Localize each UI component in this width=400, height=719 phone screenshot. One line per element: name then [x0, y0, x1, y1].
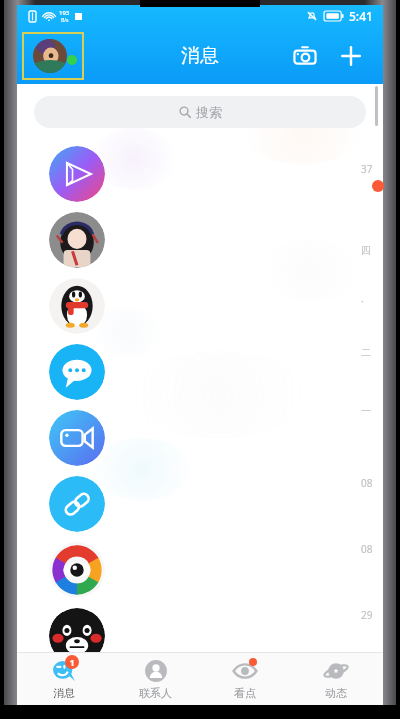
- staticText: B/s: [61, 17, 69, 24]
- staticText: 四: [361, 244, 371, 257]
- button[interactable]: Conversation avatar 7: [49, 542, 105, 598]
- staticText: 29: [361, 608, 373, 622]
- button[interactable]: 动态: [292, 653, 380, 705]
- staticText: 5:41: [349, 8, 373, 24]
- button[interactable]: Profile: [23, 33, 83, 79]
- button[interactable]: Conversation avatar 3: [49, 278, 105, 334]
- staticText: 37: [361, 162, 373, 176]
- button[interactable]: Camera: [285, 36, 325, 76]
- button[interactable]: Conversation avatar 4: [49, 344, 105, 400]
- staticText: 消息: [53, 686, 75, 700]
- staticText: 消息: [181, 44, 219, 68]
- staticText: 193: [59, 9, 70, 17]
- button[interactable]: 1: [20, 653, 108, 705]
- button[interactable]: 联系人: [111, 653, 199, 705]
- staticText: 08: [361, 542, 373, 556]
- staticText: 看点: [234, 686, 256, 700]
- button[interactable]: Conversation avatar 8: [49, 608, 105, 664]
- staticText: 二: [361, 346, 371, 359]
- button[interactable]: Add: [331, 36, 371, 76]
- staticText: ·: [361, 294, 364, 308]
- staticText: 动态: [325, 686, 347, 700]
- button[interactable]: Conversation avatar 1: [49, 146, 105, 202]
- button[interactable]: Conversation avatar 2: [49, 212, 105, 268]
- staticText: 一: [361, 404, 371, 417]
- button[interactable]: Conversation avatar 5: [49, 410, 105, 466]
- staticText: 搜索: [196, 104, 222, 120]
- button[interactable]: Conversation avatar 6: [49, 476, 105, 532]
- staticText: 1: [69, 656, 75, 668]
- button[interactable]: 看点: [201, 653, 289, 705]
- button[interactable]: 搜索: [34, 96, 366, 128]
- staticText: 联系人: [139, 686, 172, 700]
- staticText: 08: [361, 476, 373, 490]
